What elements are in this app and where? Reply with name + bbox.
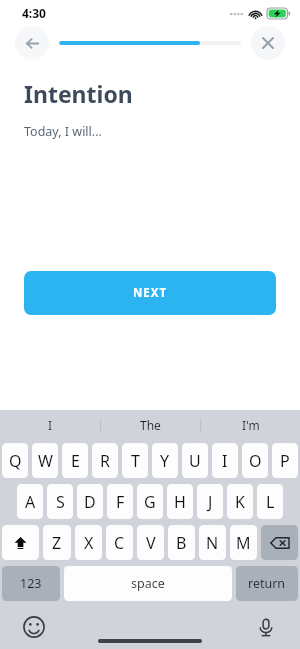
button[interactable]: C xyxy=(106,525,133,560)
button[interactable]: I xyxy=(0,410,100,440)
staticText: space xyxy=(131,575,165,592)
staticText: Y xyxy=(160,450,170,472)
staticText: U xyxy=(189,450,201,472)
button[interactable]: S xyxy=(47,484,73,519)
staticText: A xyxy=(25,491,36,513)
staticText: Intention xyxy=(24,78,133,109)
staticText: D xyxy=(84,491,96,513)
staticText: return xyxy=(248,575,286,592)
button[interactable]: N xyxy=(199,525,226,560)
button[interactable]: NEXT xyxy=(24,271,276,315)
staticText: B xyxy=(176,532,187,554)
button[interactable]: M xyxy=(230,525,257,560)
staticText: V xyxy=(146,532,156,554)
staticText: 4:30 xyxy=(22,5,46,21)
button[interactable]: E xyxy=(62,443,88,478)
button[interactable]: 123 xyxy=(2,566,60,601)
button[interactable]: I xyxy=(212,443,238,478)
button[interactable]: Q xyxy=(2,443,28,478)
staticText: S xyxy=(56,491,65,513)
button[interactable]: I'm xyxy=(201,410,300,440)
button[interactable]: W xyxy=(32,443,58,478)
button[interactable]: Voice input xyxy=(254,615,278,639)
staticText: I xyxy=(222,450,228,472)
button[interactable]: U xyxy=(182,443,208,478)
staticText: Today, I will... xyxy=(24,123,102,140)
staticText: X xyxy=(84,532,94,554)
button[interactable]: Back xyxy=(15,26,49,60)
staticText: I xyxy=(48,417,53,433)
button[interactable]: R xyxy=(92,443,118,478)
staticText: The xyxy=(140,417,161,433)
button[interactable]: Y xyxy=(152,443,178,478)
button[interactable]: Backspace xyxy=(261,525,298,560)
button[interactable]: Z xyxy=(43,525,71,560)
staticText: L xyxy=(266,491,275,513)
staticText: N xyxy=(206,532,219,554)
button[interactable]: Emoji xyxy=(22,615,46,639)
button[interactable]: A xyxy=(17,484,43,519)
button[interactable]: Shift xyxy=(2,525,39,560)
staticText: T xyxy=(131,450,140,472)
staticText: M xyxy=(236,532,251,554)
staticText: G xyxy=(144,491,156,513)
button[interactable]: B xyxy=(168,525,195,560)
staticText: H xyxy=(174,491,186,513)
button[interactable]: V xyxy=(137,525,164,560)
button[interactable]: The xyxy=(101,410,200,440)
button[interactable]: return xyxy=(236,566,298,601)
staticText: 123 xyxy=(20,575,42,592)
button[interactable]: F xyxy=(107,484,133,519)
staticText: Q xyxy=(9,450,22,472)
button[interactable]: P xyxy=(272,443,298,478)
staticText: O xyxy=(249,450,262,472)
staticText: E xyxy=(71,450,80,472)
button[interactable]: G xyxy=(137,484,163,519)
staticText: R xyxy=(100,450,110,472)
button[interactable]: L xyxy=(257,484,283,519)
button[interactable]: space xyxy=(64,566,232,601)
staticText: J xyxy=(208,491,213,513)
button[interactable]: K xyxy=(227,484,253,519)
button[interactable]: Close xyxy=(251,26,285,60)
staticText: Z xyxy=(52,532,62,554)
staticText: W xyxy=(38,450,53,472)
staticText: F xyxy=(116,491,125,513)
staticText: C xyxy=(114,532,125,554)
staticText: P xyxy=(280,450,290,472)
button[interactable]: X xyxy=(75,525,102,560)
button[interactable]: D xyxy=(77,484,103,519)
staticText: K xyxy=(235,491,245,513)
button[interactable]: T xyxy=(122,443,148,478)
staticText: I'm xyxy=(242,417,260,433)
staticText: NEXT xyxy=(133,285,168,301)
button[interactable]: H xyxy=(167,484,193,519)
button[interactable]: O xyxy=(242,443,268,478)
button[interactable]: J xyxy=(197,484,223,519)
